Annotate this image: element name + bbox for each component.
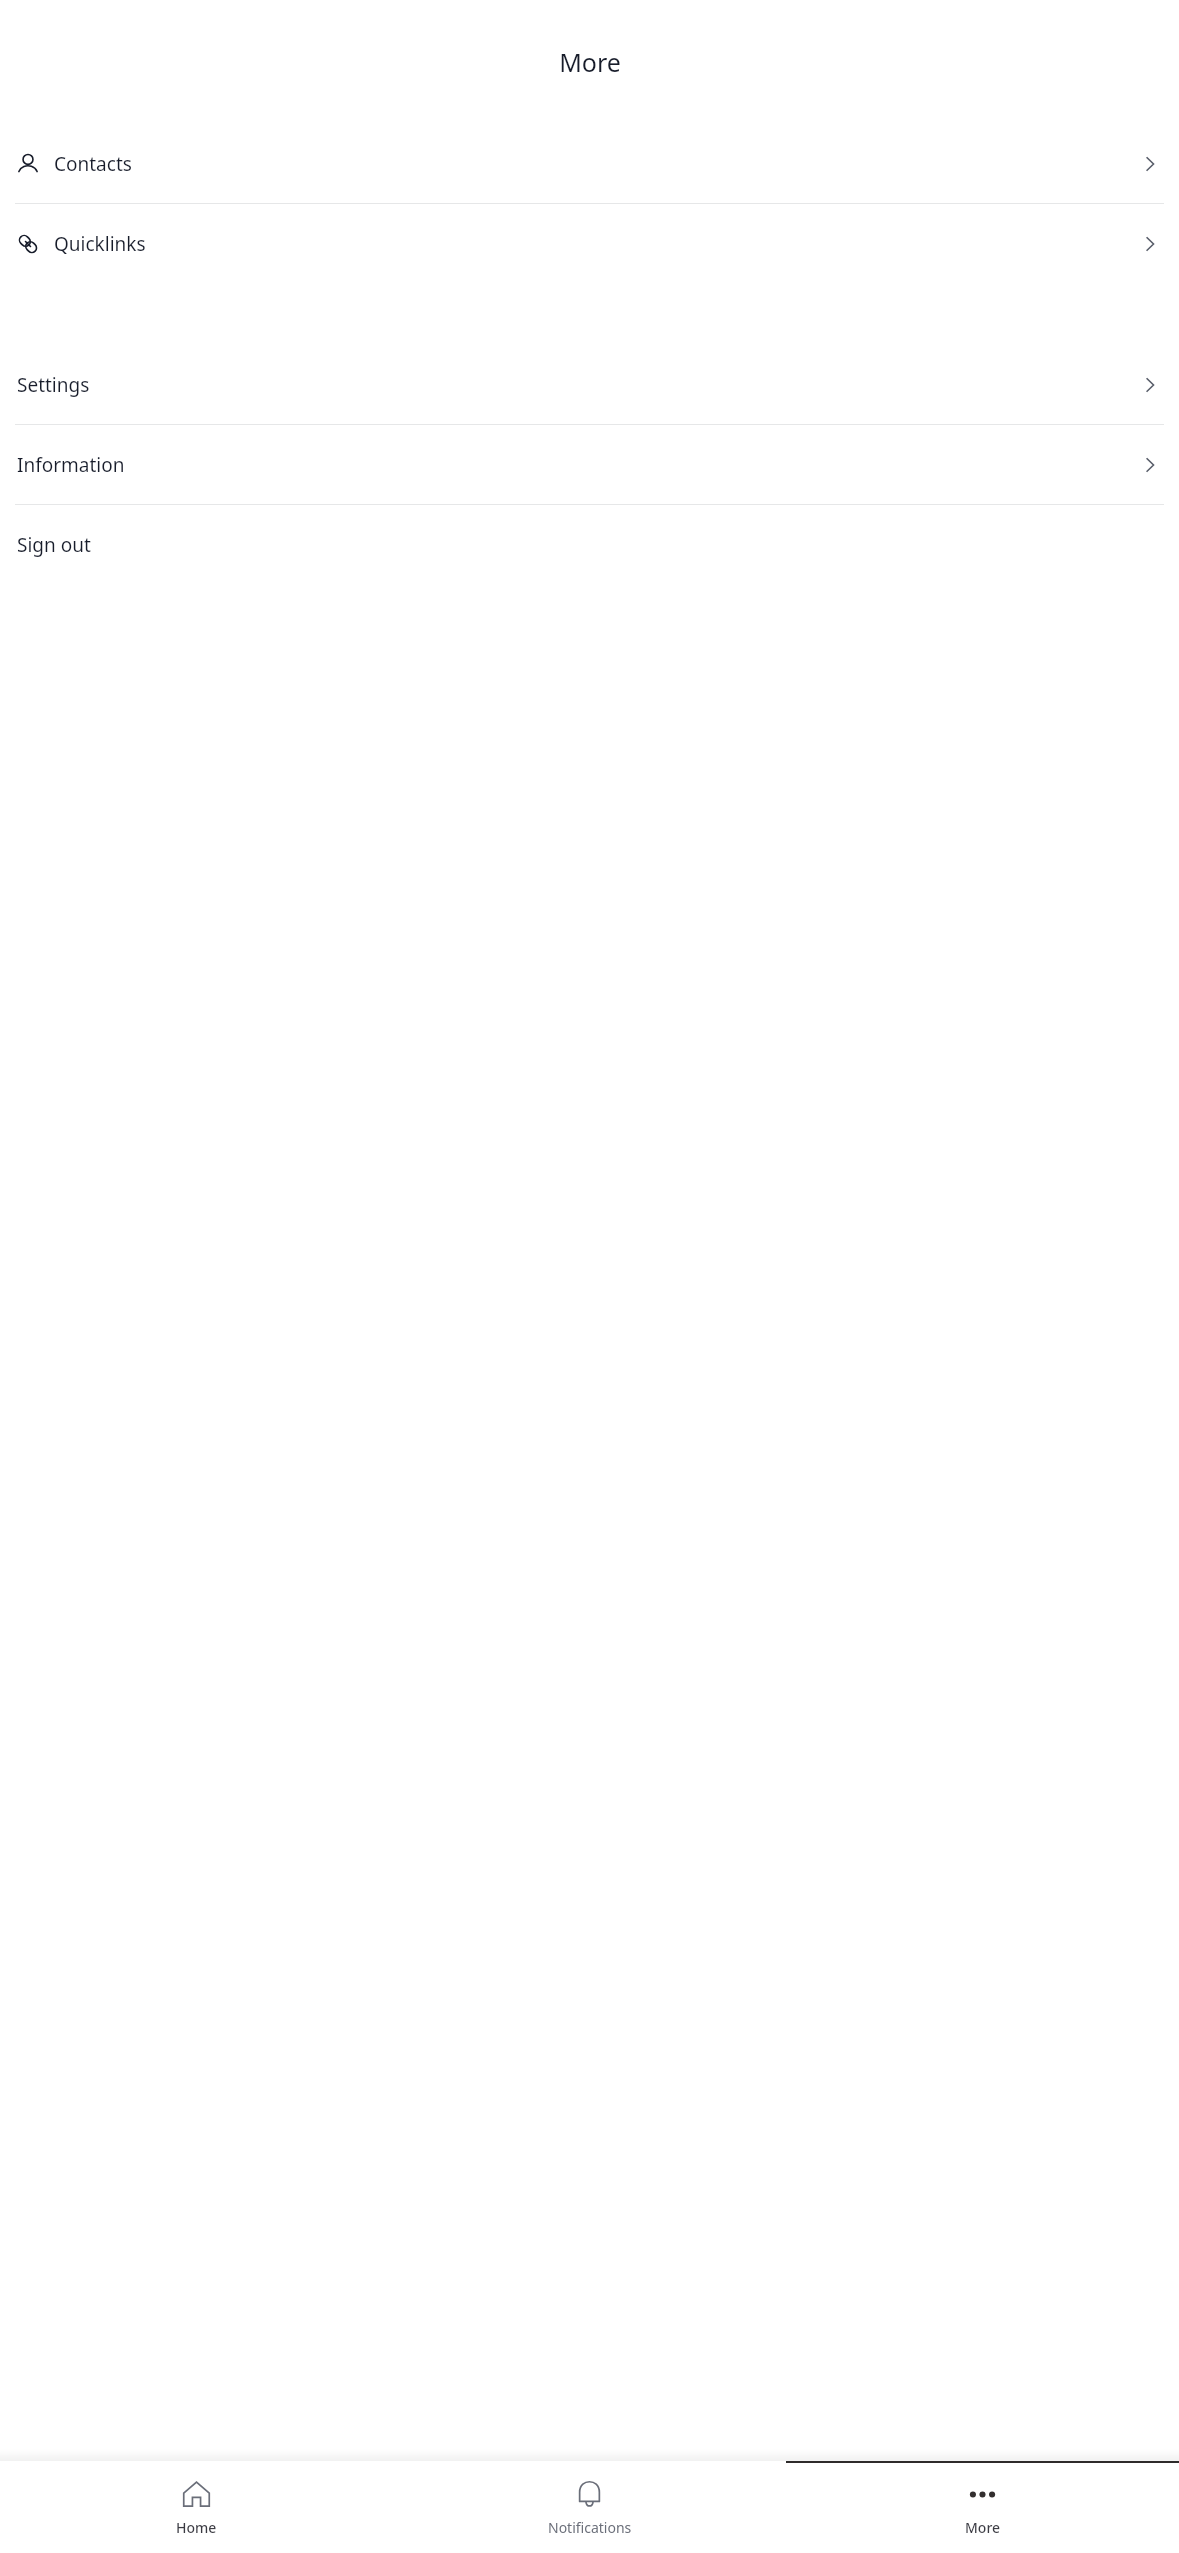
button[interactable]: Settings: [0, 345, 1179, 424]
staticText: Information: [17, 452, 1139, 478]
button[interactable]: Notifications: [393, 2463, 786, 2553]
button[interactable]: Sign out: [0, 505, 1179, 584]
staticText: Settings: [17, 372, 1139, 398]
button[interactable]: Quicklinks: [0, 204, 1179, 283]
button[interactable]: Home: [0, 2463, 393, 2553]
button[interactable]: More: [786, 2463, 1179, 2553]
staticText: More: [965, 2518, 1001, 2537]
staticText: Contacts: [54, 151, 1139, 177]
button[interactable]: Contacts: [0, 124, 1179, 203]
staticText: More: [559, 45, 621, 79]
staticText: Sign out: [17, 532, 1161, 558]
button[interactable]: Information: [0, 425, 1179, 504]
staticText: Notifications: [548, 2518, 632, 2537]
staticText: Home: [176, 2518, 217, 2537]
staticText: Quicklinks: [54, 231, 1139, 257]
